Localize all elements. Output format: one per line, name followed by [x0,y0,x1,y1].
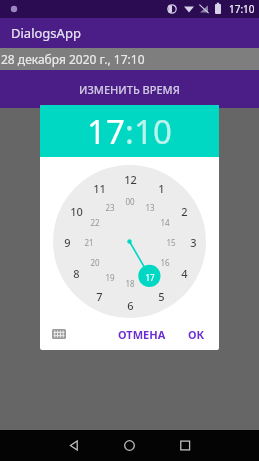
staticText: 12 [124,172,137,187]
staticText: 21 [84,237,94,248]
staticText: 10 [70,204,83,219]
staticText: : [125,109,134,154]
staticText: DialogsApp [11,24,81,42]
staticText: 3 [190,235,197,250]
staticText: 00 [125,196,135,207]
button[interactable]: ОК [182,323,211,346]
staticText: 22 [90,217,100,228]
staticText: 13 [145,202,155,213]
staticText: 15 [166,237,176,248]
staticText: 28 декабря 2020 г., 17:10 [1,51,145,67]
staticText: 4 [181,266,188,281]
staticText: 7 [96,289,103,304]
staticText: 14 [160,217,170,228]
staticText: 17 [145,272,155,283]
staticText: 17:10 [229,2,255,16]
staticText: 8 [73,266,80,281]
staticText: 23 [105,202,115,213]
staticText: 18 [125,278,135,289]
button[interactable]: Keyboard input [48,323,70,345]
staticText: 19 [105,272,115,283]
staticText: 5 [158,289,165,304]
staticText: 2 [181,204,188,219]
button[interactable]: ИЗМЕНИТЬ ВРЕМЯ [0,70,259,108]
staticText: 1 [158,181,165,196]
button[interactable]: 17 [87,109,125,154]
button[interactable]: 10 [134,109,172,154]
staticText: 20 [90,257,100,268]
staticText: ОТМЕНА [118,327,166,342]
staticText: 11 [93,181,106,196]
staticText: ОК [188,327,205,342]
staticText: ИЗМЕНИТЬ ВРЕМЯ [79,82,180,97]
staticText: 9 [64,235,71,250]
staticText: 16 [160,257,170,268]
staticText: 6 [127,298,134,313]
button[interactable]: ОТМЕНА [112,323,172,346]
